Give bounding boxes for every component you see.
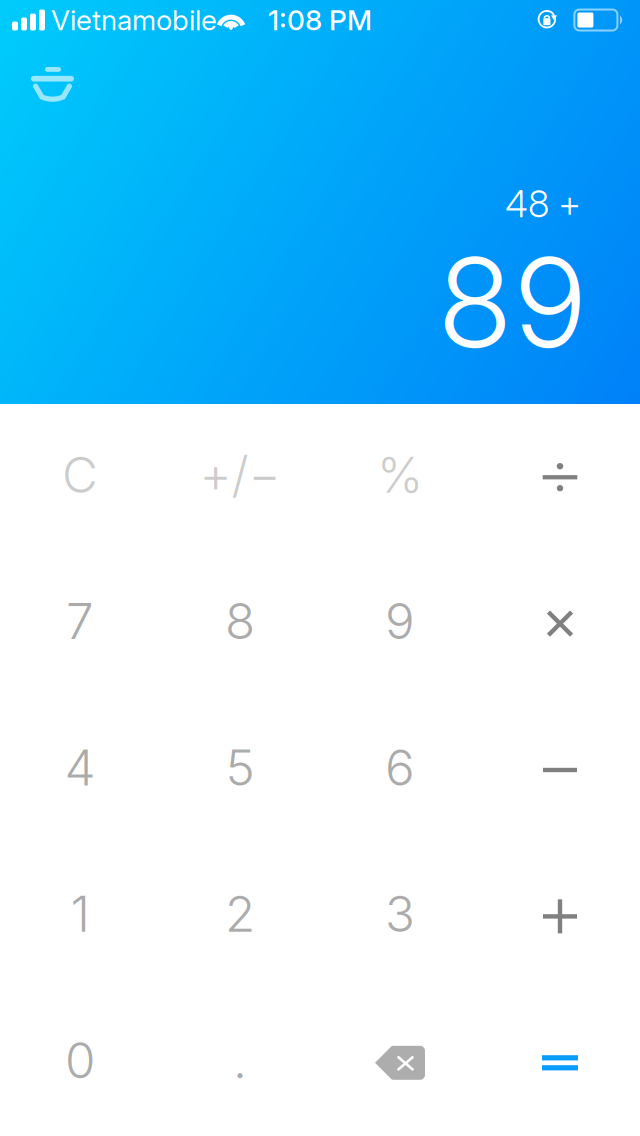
button[interactable]: Divide	[480, 404, 640, 550]
button[interactable]: 8	[160, 550, 320, 697]
button[interactable]: Equals	[480, 990, 640, 1136]
button[interactable]: 2	[160, 843, 320, 990]
button[interactable]: 6	[320, 697, 480, 843]
staticText: 5	[225, 738, 254, 797]
button[interactable]: 0	[0, 990, 160, 1136]
staticText: 8	[225, 591, 255, 651]
button[interactable]: 9	[320, 550, 480, 697]
staticText: 89	[437, 227, 588, 377]
staticText: 0	[65, 1030, 95, 1090]
staticText: +/−	[199, 445, 280, 505]
button[interactable]: %	[320, 404, 480, 550]
staticText: 4	[64, 738, 95, 797]
staticText: 7	[66, 591, 94, 651]
button[interactable]: 1	[0, 843, 160, 990]
button[interactable]: C	[0, 404, 160, 550]
staticText: 2	[225, 884, 255, 944]
button[interactable]: Minus	[480, 697, 640, 843]
staticText: %	[377, 445, 423, 505]
staticText: 9	[385, 591, 415, 651]
staticText: .	[233, 1030, 247, 1090]
button[interactable]: 4	[0, 697, 160, 843]
button[interactable]: 5	[160, 697, 320, 843]
button[interactable]: History	[0, 0, 74, 102]
staticText: C	[62, 445, 98, 505]
button[interactable]: +/−	[160, 404, 320, 550]
button[interactable]: 3	[320, 843, 480, 990]
staticText: 1	[70, 884, 89, 944]
staticText: Vietnamobile	[51, 3, 217, 37]
staticText: 1:08 PM	[268, 3, 372, 37]
staticText: 48 +	[505, 181, 581, 226]
staticText: 6	[385, 738, 415, 797]
button[interactable]: Plus	[480, 843, 640, 990]
button[interactable]: Backspace	[320, 990, 480, 1136]
button[interactable]: 7	[0, 550, 160, 697]
staticText: 3	[385, 884, 415, 944]
button[interactable]: Multiply	[480, 550, 640, 697]
